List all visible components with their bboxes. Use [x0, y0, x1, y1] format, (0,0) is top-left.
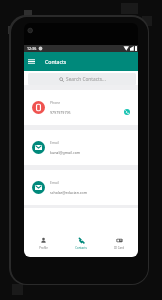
staticText: Contacts — [75, 246, 87, 250]
button[interactable]: Contacts — [62, 230, 100, 257]
staticText: 12:36 — [27, 46, 37, 51]
button[interactable]: ID Card — [100, 230, 138, 257]
staticText: Email — [50, 140, 59, 145]
staticText: 9797979795 — [50, 110, 71, 115]
button[interactable]: Profile — [24, 230, 62, 257]
staticText: kunal@gmail.com — [50, 150, 81, 155]
button[interactable]: Open navigation menu — [28, 58, 35, 65]
button[interactable]: Search Contacts... — [28, 73, 136, 85]
staticText: Phone — [50, 100, 61, 105]
button[interactable]: Email — [24, 130, 138, 165]
staticText: Profile — [39, 246, 48, 250]
button[interactable]: Email — [24, 170, 138, 205]
button[interactable]: Call — [124, 109, 130, 115]
staticText: Contacts — [45, 58, 67, 65]
staticText: ID Card — [114, 246, 124, 250]
staticText: Email — [50, 180, 59, 185]
button[interactable]: Phone — [24, 90, 138, 125]
staticText: scholar@educian.com — [50, 190, 88, 195]
staticText: Search Contacts... — [66, 76, 106, 83]
